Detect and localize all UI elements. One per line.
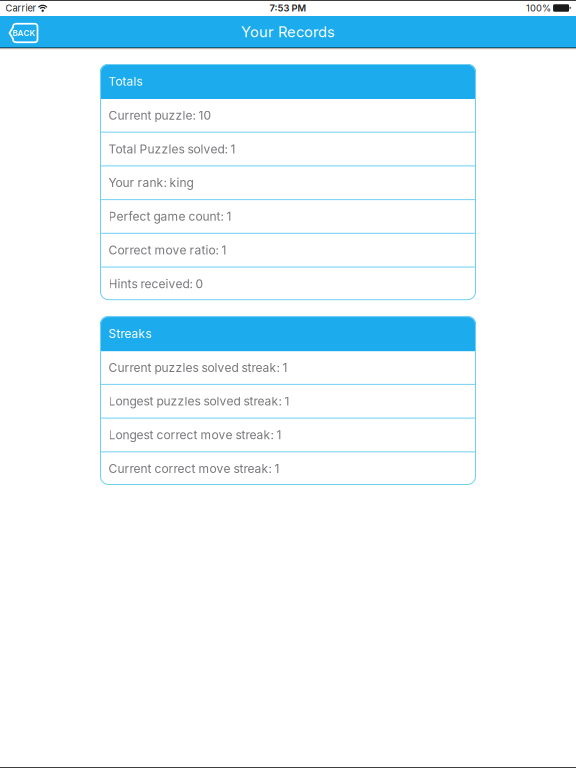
staticText: Your rank: king: [108, 175, 193, 190]
staticText: Totals: [108, 74, 142, 89]
staticText: BACK: [13, 28, 36, 38]
button[interactable]: Current correct move streak: 1: [100, 452, 476, 485]
staticText: Longest puzzles solved streak: 1: [108, 394, 289, 408]
button[interactable]: Correct move ratio: 1: [100, 234, 476, 266]
button[interactable]: Your rank: king: [100, 166, 476, 199]
staticText: Correct move ratio: 1: [108, 243, 226, 257]
staticText: Your Records: [241, 23, 335, 41]
staticText: 7:53 PM: [269, 2, 306, 14]
staticText: Longest correct move streak: 1: [108, 428, 281, 442]
staticText: Carrier: [5, 2, 36, 14]
button[interactable]: Current puzzle: 10: [100, 99, 476, 132]
button[interactable]: Back: [9, 23, 37, 41]
staticText: 100%: [526, 2, 551, 14]
button[interactable]: Total Puzzles solved: 1: [100, 133, 476, 165]
staticText: Current puzzle: 10: [108, 108, 211, 123]
button[interactable]: Longest correct move streak: 1: [100, 419, 476, 451]
staticText: Streaks: [108, 326, 151, 341]
staticText: Total Puzzles solved: 1: [108, 142, 235, 156]
staticText: Perfect game count: 1: [108, 209, 231, 224]
button[interactable]: Current puzzles solved streak: 1: [100, 351, 476, 384]
button[interactable]: Longest puzzles solved streak: 1: [100, 385, 476, 418]
staticText: Hints received: 0: [108, 277, 203, 291]
staticText: Current puzzles solved streak: 1: [108, 360, 287, 375]
button[interactable]: Perfect game count: 1: [100, 200, 476, 233]
staticText: Current correct move streak: 1: [108, 461, 279, 476]
button[interactable]: Hints received: 0: [100, 267, 476, 300]
